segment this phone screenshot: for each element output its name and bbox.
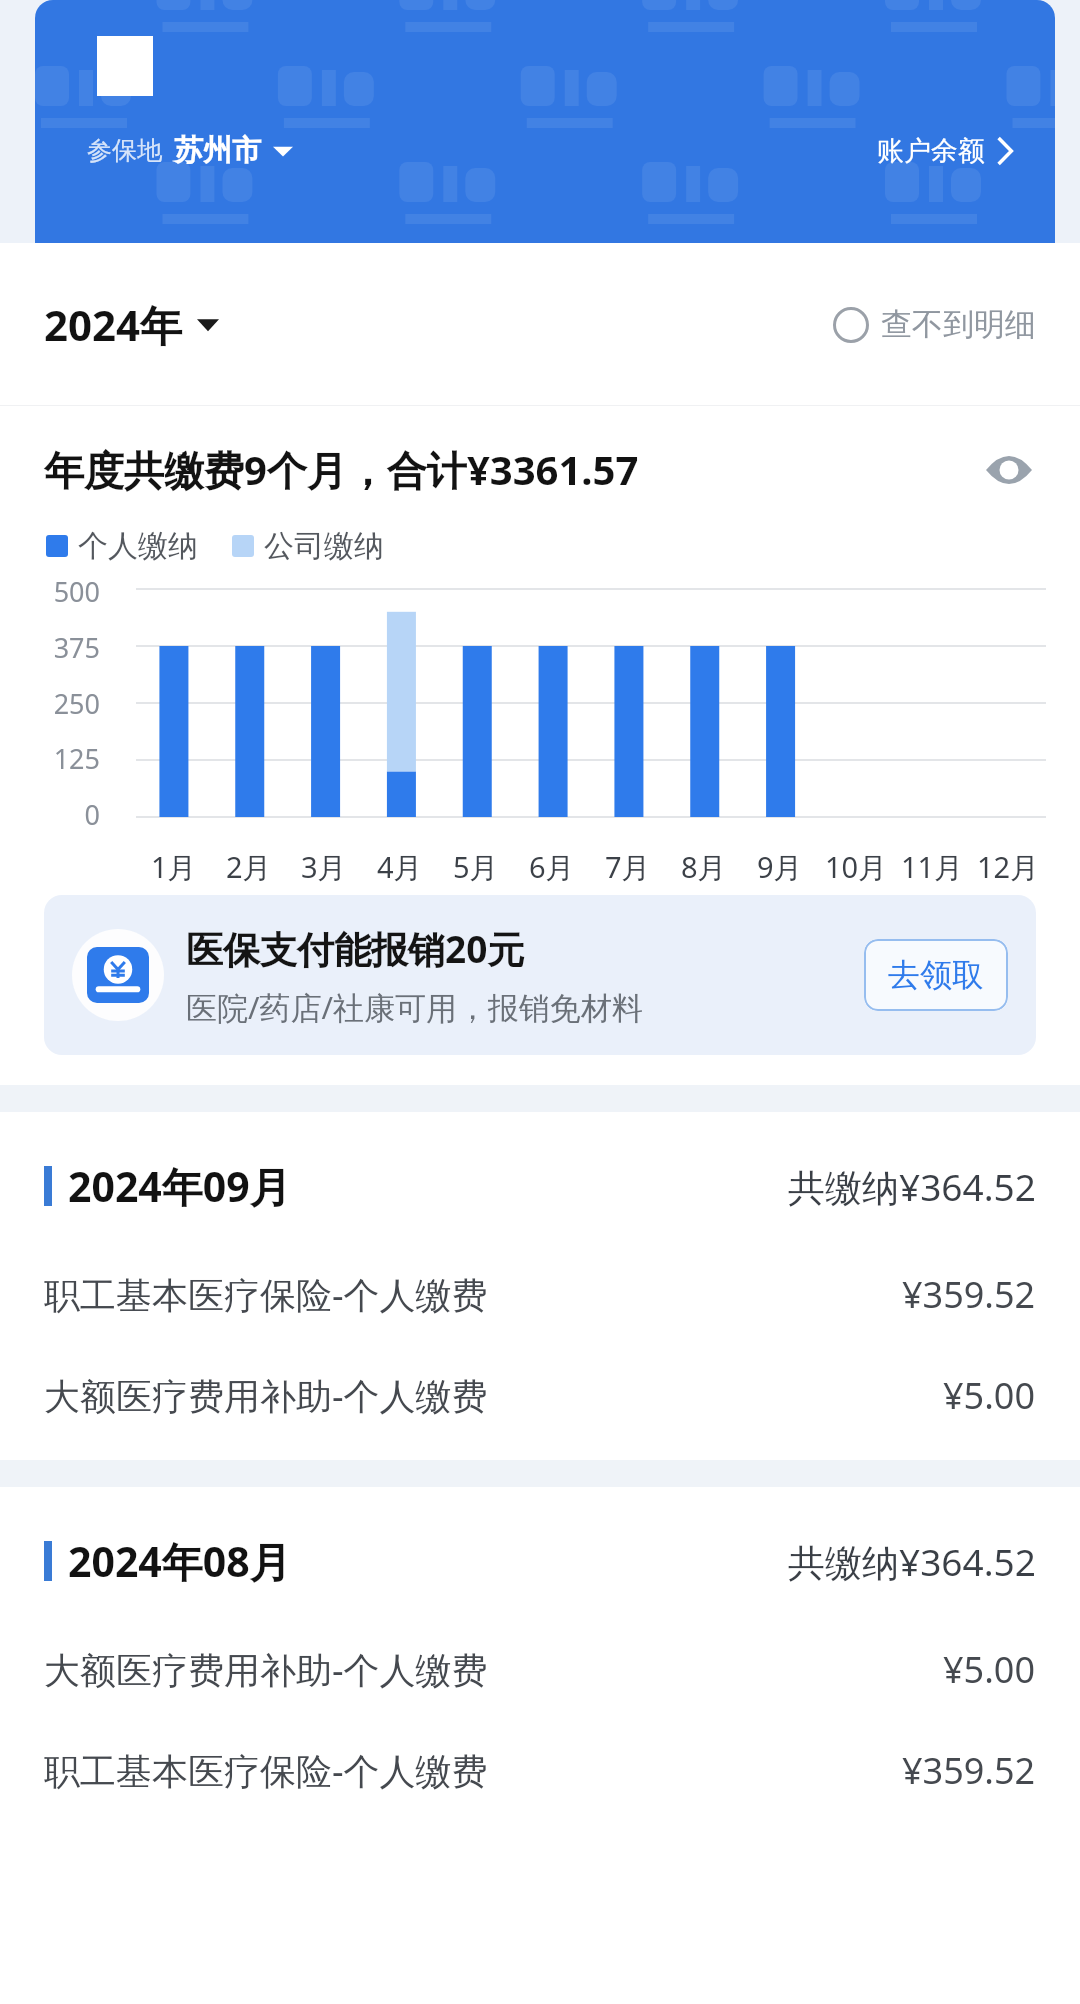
button[interactable]: 2024年09月 bbox=[0, 1112, 1080, 1244]
staticText: 7月 bbox=[605, 847, 651, 887]
staticText: 250 bbox=[53, 685, 100, 722]
staticText: 职工基本医疗保险-个人缴费 bbox=[44, 1746, 488, 1795]
staticText: ¥359.52 bbox=[902, 1270, 1036, 1319]
staticText: 6月 bbox=[529, 847, 575, 887]
button[interactable]: 参保地 bbox=[87, 132, 293, 169]
staticText: 125 bbox=[53, 740, 100, 777]
staticText: 大额医疗费用补助-个人缴费 bbox=[44, 1371, 488, 1420]
button[interactable]: 去领取 bbox=[864, 939, 1008, 1011]
staticText: 8月 bbox=[681, 847, 727, 887]
staticText: 2024年09月 bbox=[68, 1158, 291, 1214]
staticText: 500 bbox=[53, 573, 100, 610]
button[interactable]: 职工基本医疗保险-个人缴费 bbox=[0, 1244, 1080, 1345]
staticText: ¥359.52 bbox=[902, 1746, 1036, 1795]
staticText: 9月 bbox=[757, 847, 803, 887]
button[interactable]: 隐藏金额 bbox=[982, 443, 1036, 497]
staticText: 5月 bbox=[453, 847, 499, 887]
staticText: 1月 bbox=[151, 847, 197, 887]
staticText: 共缴纳¥364.52 bbox=[788, 1161, 1036, 1212]
button[interactable]: 大额医疗费用补助-个人缴费 bbox=[0, 1619, 1080, 1720]
button[interactable]: 医保支付能报销20元 bbox=[44, 895, 1036, 1055]
staticText: 查不到明细 bbox=[881, 305, 1036, 344]
button[interactable]: 大额医疗费用补助-个人缴费 bbox=[0, 1345, 1080, 1446]
staticText: 375 bbox=[53, 629, 100, 666]
button[interactable]: 职工基本医疗保险-个人缴费 bbox=[0, 1720, 1080, 1821]
staticText: 2024年08月 bbox=[68, 1533, 291, 1589]
staticText: ¥5.00 bbox=[943, 1645, 1036, 1694]
staticText: 去领取 bbox=[888, 955, 984, 995]
staticText: 12月 bbox=[977, 847, 1040, 887]
staticText: 2024年 bbox=[44, 296, 183, 353]
button[interactable]: 账户余额 bbox=[877, 134, 1013, 168]
staticText: 大额医疗费用补助-个人缴费 bbox=[44, 1645, 488, 1694]
staticText: 公司缴纳 bbox=[264, 527, 384, 565]
button[interactable]: 2024年08月 bbox=[0, 1487, 1080, 1619]
staticText: 共缴纳¥364.52 bbox=[788, 1536, 1036, 1587]
staticText: 个人缴纳 bbox=[78, 527, 198, 565]
staticText: 年度共缴费9个月，合计¥3361.57 bbox=[44, 442, 639, 497]
staticText: 苏州市 bbox=[174, 132, 261, 169]
staticText: 0 bbox=[84, 796, 100, 833]
staticText: 10月 bbox=[825, 847, 888, 887]
button[interactable]: 2024年 bbox=[44, 296, 219, 353]
staticText: 医院/药店/社康可用，报销免材料 bbox=[186, 986, 644, 1028]
staticText: ¥5.00 bbox=[943, 1371, 1036, 1420]
staticText: 4月 bbox=[377, 847, 423, 887]
staticText: 账户余额 bbox=[877, 134, 985, 168]
staticText: 2月 bbox=[226, 847, 272, 887]
staticText: 参保地 bbox=[87, 135, 162, 166]
staticText: 职工基本医疗保险-个人缴费 bbox=[44, 1270, 488, 1319]
staticText: 医保支付能报销20元 bbox=[186, 923, 525, 974]
staticText: 11月 bbox=[901, 847, 964, 887]
button[interactable]: 查不到明细 bbox=[833, 305, 1036, 344]
staticText: 3月 bbox=[301, 847, 347, 887]
